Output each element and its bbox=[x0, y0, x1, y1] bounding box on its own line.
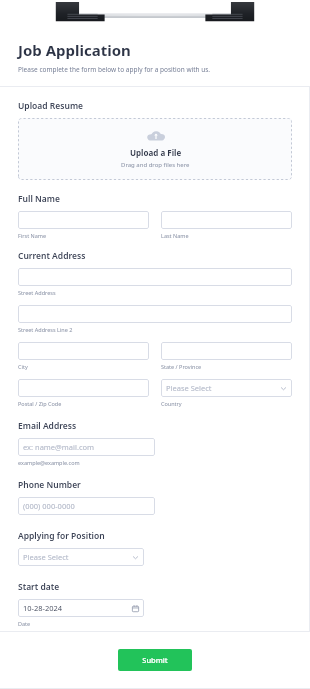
staticText: Date bbox=[18, 620, 31, 627]
staticText: Job Application bbox=[18, 40, 131, 60]
staticText: State / Province bbox=[161, 363, 202, 370]
button[interactable] bbox=[161, 342, 292, 360]
button[interactable] bbox=[18, 268, 292, 286]
staticText: Please Select bbox=[166, 383, 212, 393]
staticText: 10-28-2024 bbox=[23, 603, 63, 613]
staticText: (000) 000-0000 bbox=[23, 501, 75, 511]
button[interactable]: Submit bbox=[118, 649, 192, 671]
staticText: Please complete the form below to apply … bbox=[18, 65, 211, 74]
button[interactable] bbox=[18, 305, 292, 323]
button[interactable] bbox=[161, 211, 292, 229]
staticText: Street Address bbox=[18, 289, 56, 296]
staticText: Country bbox=[161, 400, 182, 407]
staticText: City bbox=[18, 363, 28, 370]
staticText: Submit bbox=[142, 655, 168, 665]
staticText: Phone Number bbox=[18, 479, 81, 491]
staticText: Please Select bbox=[23, 552, 69, 562]
staticText: Applying for Position bbox=[18, 530, 105, 542]
button[interactable]: (000) 000-0000 bbox=[18, 497, 155, 515]
button[interactable] bbox=[18, 342, 149, 360]
staticText: example@example.com bbox=[18, 459, 80, 466]
button[interactable] bbox=[18, 379, 149, 397]
staticText: Email Address bbox=[18, 420, 77, 432]
staticText: First Name bbox=[18, 232, 47, 239]
staticText: Last Name bbox=[161, 232, 189, 239]
staticText: Current Address bbox=[18, 250, 86, 262]
button[interactable]: ex: name@mail.com bbox=[18, 438, 155, 456]
staticText: ex: name@mail.com bbox=[23, 442, 95, 452]
button[interactable]: Please Select bbox=[161, 379, 292, 397]
button[interactable]: Upload a file bbox=[18, 118, 292, 180]
button[interactable] bbox=[18, 211, 149, 229]
button[interactable]: Please Select bbox=[18, 548, 144, 566]
staticText: Street Address Line 2 bbox=[18, 326, 73, 333]
staticText: Drag and drop files here bbox=[121, 161, 190, 169]
staticText: Upload a File bbox=[130, 147, 182, 158]
staticText: Upload Resume bbox=[18, 100, 84, 112]
staticText: Start date bbox=[18, 581, 60, 593]
staticText: Full Name bbox=[18, 193, 60, 205]
button[interactable]: 10-28-2024 bbox=[18, 599, 144, 617]
staticText: Postal / Zip Code bbox=[18, 400, 62, 407]
